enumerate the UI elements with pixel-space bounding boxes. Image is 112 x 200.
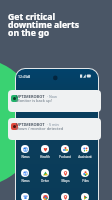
button[interactable]: Files bbox=[75, 169, 95, 183]
button[interactable]: UPTIMEROBOT bbox=[8, 118, 101, 140]
staticText: News bbox=[21, 179, 30, 183]
staticText: Down / monitor detected bbox=[16, 126, 64, 131]
staticText: 12:45 bbox=[18, 74, 28, 79]
button[interactable]: Drive bbox=[35, 193, 55, 200]
staticText: Maps bbox=[61, 179, 70, 183]
staticText: UPTIMEROBOT bbox=[16, 94, 45, 99]
staticText: · 5 min bbox=[47, 122, 59, 127]
button[interactable]: Maps bbox=[55, 169, 75, 183]
staticText: Health bbox=[40, 155, 50, 159]
button[interactable]: Podcast bbox=[55, 145, 75, 159]
button[interactable]: Health bbox=[35, 145, 55, 159]
staticText: UPTIMEROBOT bbox=[16, 122, 45, 127]
staticText: · Now bbox=[47, 94, 57, 99]
button[interactable]: Calendar bbox=[16, 193, 35, 200]
button[interactable]: News bbox=[16, 169, 35, 183]
staticText: News bbox=[21, 155, 30, 159]
button[interactable]: Drive bbox=[35, 169, 55, 183]
button[interactable]: Play bbox=[75, 193, 95, 200]
button[interactable]: Maps bbox=[55, 193, 75, 200]
button[interactable]: UPTIMEROBOT bbox=[8, 90, 101, 112]
button[interactable]: News bbox=[16, 145, 35, 159]
staticText: Drive bbox=[41, 179, 49, 183]
staticText: Monitor is back up! bbox=[16, 98, 52, 103]
staticText: Podcast bbox=[59, 155, 71, 159]
button[interactable]: Assistant bbox=[75, 145, 95, 159]
staticText: Assistant bbox=[78, 155, 92, 159]
staticText: Get critical downtime alerts on the go bbox=[8, 11, 80, 39]
staticText: Files bbox=[82, 179, 89, 183]
